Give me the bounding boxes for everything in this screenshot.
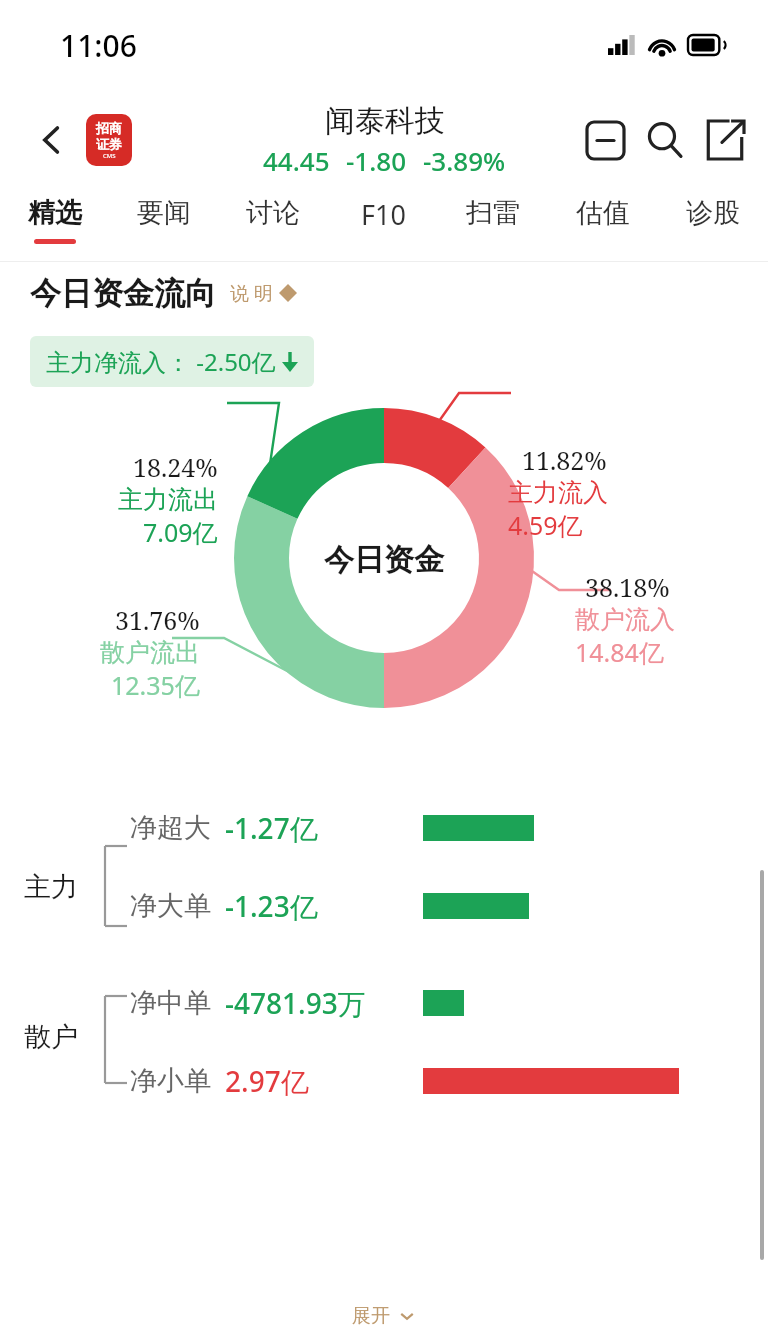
staticText: 讨论 <box>246 196 300 230</box>
staticText: 主力 <box>24 870 78 904</box>
button[interactable]: 估值 <box>548 190 658 262</box>
staticText: 44.45 <box>263 143 330 178</box>
button[interactable]: Search <box>638 113 692 167</box>
button[interactable]: Remove <box>578 113 632 167</box>
button[interactable]: 主力净流入： -2.50亿 <box>30 336 314 387</box>
button[interactable]: 扫雷 <box>438 190 548 262</box>
staticText: -1.27亿 <box>225 809 318 847</box>
staticText: 4.59亿 <box>508 508 583 542</box>
button[interactable]: 诊股 <box>658 190 768 262</box>
staticText: 说 明 <box>230 280 273 306</box>
staticText: 散户 <box>24 1020 78 1054</box>
button[interactable]: 要闻 <box>109 190 218 262</box>
staticText: 散户流入 <box>575 604 675 635</box>
staticText: 估值 <box>576 196 630 230</box>
staticText: 净大单 <box>130 889 211 923</box>
staticText: 要闻 <box>137 196 191 230</box>
staticText: 11:06 <box>60 25 137 66</box>
staticText: 闻泰科技 <box>325 102 445 140</box>
staticText: 展开 <box>352 1304 390 1328</box>
staticText: 38.18% <box>585 570 670 604</box>
staticText: 净超大 <box>130 811 211 845</box>
staticText: F10 <box>361 196 406 233</box>
staticText: -1.23亿 <box>225 887 318 925</box>
staticText: 散户流出 <box>100 637 200 668</box>
button[interactable]: 说 明 <box>230 280 297 306</box>
button[interactable]: 净小单 <box>130 1051 768 1111</box>
staticText: 12.35亿 <box>111 668 200 702</box>
staticText: 精选 <box>28 196 82 230</box>
button[interactable]: 净超大 <box>130 798 768 858</box>
staticText: 31.76% <box>115 603 200 637</box>
button[interactable]: 招商证券 <box>86 114 132 166</box>
staticText: 主力流出 <box>118 484 218 515</box>
staticText: -1.80 <box>346 143 407 178</box>
button[interactable]: 讨论 <box>218 190 328 262</box>
staticText: 扫雷 <box>466 196 520 230</box>
staticText: 证券 <box>96 136 122 152</box>
button[interactable]: 精选 <box>0 190 109 262</box>
button[interactable]: 展开 <box>332 1298 436 1328</box>
staticText: 14.84亿 <box>575 635 664 669</box>
staticText: 净中单 <box>130 986 211 1020</box>
staticText: 11.82% <box>522 443 607 477</box>
staticText: -4781.93万 <box>225 984 366 1022</box>
button[interactable]: Back <box>26 114 78 166</box>
staticText: CMS <box>103 152 116 160</box>
button[interactable]: Share <box>698 113 752 167</box>
staticText: 7.09亿 <box>143 515 218 549</box>
button[interactable]: 净中单 <box>130 973 768 1033</box>
staticText: 诊股 <box>686 196 740 230</box>
staticText: 净小单 <box>130 1064 211 1098</box>
staticText: 18.24% <box>133 450 218 484</box>
button[interactable]: 净大单 <box>130 876 768 936</box>
staticText: 主力流入 <box>508 477 608 508</box>
button[interactable]: F10 <box>328 190 438 262</box>
staticText: 主力净流入： -2.50亿 <box>46 345 276 378</box>
staticText: 招商 <box>96 120 122 136</box>
staticText: 2.97亿 <box>225 1062 309 1100</box>
staticText: 今日资金流向 <box>30 274 216 313</box>
staticText: -3.89% <box>423 143 506 178</box>
staticText: 今日资金 <box>324 541 444 579</box>
